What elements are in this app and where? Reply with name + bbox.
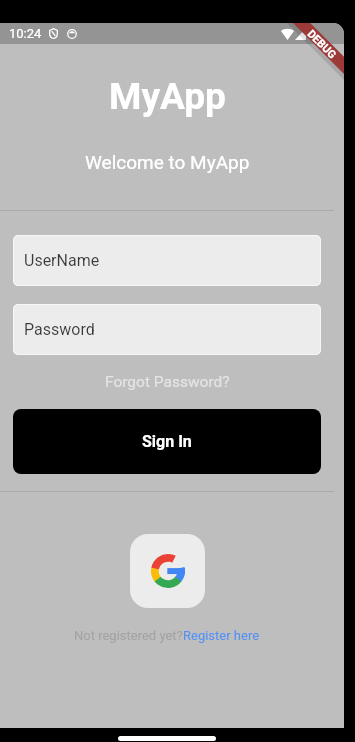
button[interactable]: Sign In xyxy=(13,409,321,474)
staticText: Password xyxy=(24,320,95,339)
staticText: Forgot Password? xyxy=(105,373,230,391)
staticText: Not registered yet? xyxy=(74,628,183,643)
staticText: MyApp xyxy=(109,75,226,118)
button[interactable]: Sign in with Google xyxy=(130,534,205,608)
button[interactable]: UserName xyxy=(13,235,321,286)
staticText: 10:24 xyxy=(9,26,42,41)
button[interactable]: Password xyxy=(13,304,321,355)
button[interactable]: Forgot Password? xyxy=(105,373,230,391)
staticText: UserName xyxy=(24,251,100,270)
button[interactable]: Register here xyxy=(183,628,260,643)
staticText: Sign In xyxy=(142,432,192,451)
staticText: DEBUG xyxy=(304,27,339,62)
staticText: Register here xyxy=(183,628,260,643)
staticText: Welcome to MyApp xyxy=(85,151,250,173)
